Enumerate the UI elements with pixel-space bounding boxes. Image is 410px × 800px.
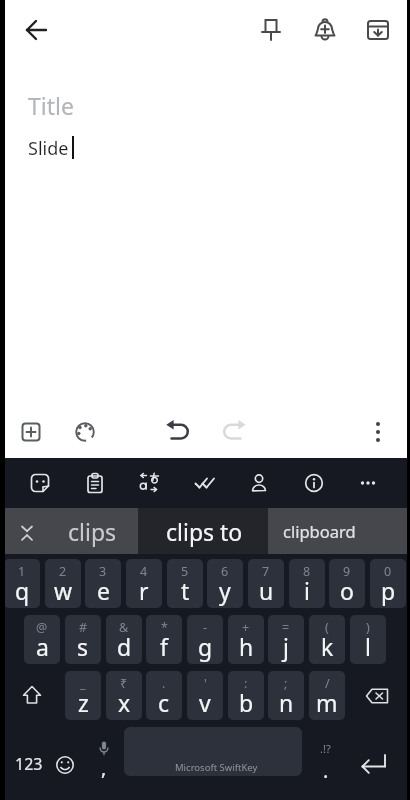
button[interactable]: [356, 8, 400, 52]
staticText: &: [119, 619, 129, 636]
staticText: q: [15, 575, 30, 606]
button[interactable]: clips: [52, 508, 132, 554]
staticText: x: [118, 687, 131, 718]
staticText: 1: [18, 563, 26, 580]
button[interactable]: _: [65, 671, 101, 720]
staticText: .!?: [320, 741, 331, 756]
button[interactable]: 0: [370, 559, 406, 608]
staticText: j: [283, 631, 289, 662]
staticText: h: [239, 631, 254, 662]
button[interactable]: ): [350, 615, 386, 664]
button[interactable]: [237, 461, 281, 505]
button[interactable]: [6, 670, 58, 722]
button[interactable]: [346, 461, 390, 505]
staticText: 123: [15, 753, 43, 775]
button[interactable]: [303, 8, 347, 52]
staticText: u: [259, 575, 274, 606]
button[interactable]: =: [268, 615, 304, 664]
button[interactable]: &: [106, 615, 142, 664]
button[interactable]: [45, 745, 85, 785]
button[interactable]: .: [310, 756, 342, 784]
staticText: clips to: [166, 516, 243, 547]
staticText: b: [239, 687, 254, 718]
staticText: _: [80, 675, 86, 692]
button[interactable]: (: [309, 615, 345, 664]
staticText: o: [340, 575, 354, 606]
staticText: clips: [68, 516, 117, 547]
button[interactable]: 8: [289, 559, 325, 608]
button[interactable]: *: [146, 615, 182, 664]
staticText: w: [54, 575, 73, 606]
staticText: 6: [221, 563, 229, 580]
staticText: =: [282, 619, 290, 636]
staticText: c: [158, 687, 170, 718]
staticText: 8: [303, 563, 311, 580]
staticText: ;: [284, 675, 288, 692]
button[interactable]: [5, 511, 49, 555]
button[interactable]: 1: [4, 559, 40, 608]
button[interactable]: 6: [207, 559, 243, 608]
button[interactable]: 5: [167, 559, 203, 608]
button[interactable]: [356, 410, 400, 454]
staticText: p: [381, 575, 396, 606]
button[interactable]: [292, 461, 336, 505]
button[interactable]: ,: [88, 753, 120, 781]
staticText: @: [36, 619, 48, 636]
button[interactable]: [249, 8, 293, 52]
button[interactable]: Microsoft SwiftKey: [124, 727, 302, 776]
staticText: l: [365, 631, 371, 662]
button[interactable]: clipboard: [276, 508, 362, 554]
button[interactable]: [73, 461, 117, 505]
button[interactable]: clips to: [144, 508, 264, 554]
staticText: Microsoft SwiftKey: [175, 761, 258, 774]
staticText: a: [36, 631, 49, 662]
button[interactable]: 3: [85, 559, 121, 608]
button[interactable]: 123: [10, 745, 48, 783]
button[interactable]: -: [187, 615, 223, 664]
staticText: r: [139, 575, 149, 606]
button[interactable]: 2: [45, 559, 81, 608]
button[interactable]: [15, 8, 59, 52]
staticText: /: [325, 675, 330, 692]
staticText: Title: [28, 90, 74, 120]
button[interactable]: #: [65, 615, 101, 664]
button[interactable]: [210, 409, 254, 453]
staticText: ₹: [120, 675, 128, 692]
button[interactable]: @: [24, 615, 60, 664]
button[interactable]: ;: [268, 671, 304, 720]
staticText: e: [97, 575, 110, 606]
button[interactable]: [182, 461, 226, 505]
staticText: :: [244, 675, 248, 692]
staticText: f: [160, 631, 168, 662]
button[interactable]: [9, 410, 53, 454]
button[interactable]: ': [187, 671, 223, 720]
staticText: s: [77, 631, 89, 662]
staticText: n: [279, 687, 294, 718]
button[interactable]: /: [309, 671, 345, 720]
staticText: -: [203, 619, 208, 636]
staticText: #: [79, 619, 88, 636]
staticText: 3: [99, 563, 107, 580]
button[interactable]: ₹: [106, 671, 142, 720]
staticText: i: [304, 575, 310, 606]
button[interactable]: [156, 409, 200, 453]
button[interactable]: [127, 461, 171, 505]
staticText: 2: [59, 563, 67, 580]
button[interactable]: 9: [329, 559, 365, 608]
staticText: z: [78, 687, 89, 718]
staticText: .: [162, 675, 166, 692]
button[interactable]: :: [228, 671, 264, 720]
staticText: 0: [384, 563, 392, 580]
button[interactable]: [351, 740, 397, 786]
button[interactable]: [63, 410, 107, 454]
button[interactable]: +: [228, 615, 264, 664]
button[interactable]: [351, 670, 403, 722]
staticText: y: [219, 575, 231, 606]
button[interactable]: [78, 732, 130, 784]
button[interactable]: [138, 508, 268, 554]
button[interactable]: [18, 461, 62, 505]
button[interactable]: .: [146, 671, 182, 720]
button[interactable]: 4: [126, 559, 162, 608]
button[interactable]: 7: [248, 559, 284, 608]
staticText: (: [325, 619, 329, 636]
